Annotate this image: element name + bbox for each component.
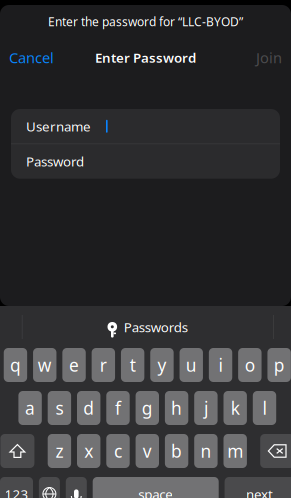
- staticText: j: [204, 396, 208, 419]
- staticText: m: [227, 439, 243, 462]
- button[interactable]: next: [225, 477, 291, 498]
- button[interactable]: m: [223, 434, 247, 468]
- button[interactable]: j: [194, 391, 218, 425]
- button[interactable]: i: [209, 348, 232, 382]
- button[interactable]: [39, 477, 60, 498]
- button[interactable]: a: [18, 391, 42, 425]
- button[interactable]: Cancel: [0, 44, 63, 70]
- staticText: Passwords: [124, 318, 188, 336]
- button[interactable]: w: [33, 348, 56, 382]
- button[interactable]: v: [136, 434, 159, 468]
- staticText: z: [55, 439, 63, 462]
- button[interactable]: t: [121, 348, 144, 382]
- button[interactable]: y: [150, 348, 174, 382]
- button[interactable]: x: [77, 434, 100, 468]
- button[interactable]: [0, 434, 34, 468]
- button[interactable]: l: [253, 391, 276, 425]
- staticText: h: [171, 396, 182, 419]
- staticText: w: [38, 353, 52, 376]
- staticText: p: [274, 353, 285, 376]
- staticText: v: [143, 439, 152, 462]
- staticText: g: [142, 396, 153, 419]
- button[interactable]: [260, 434, 291, 468]
- staticText: s: [55, 396, 63, 419]
- button[interactable]: r: [92, 348, 115, 382]
- staticText: a: [25, 396, 35, 419]
- button[interactable]: n: [194, 434, 218, 468]
- button[interactable]: 123: [0, 477, 33, 498]
- staticText: r: [100, 353, 107, 376]
- staticText: i: [219, 353, 223, 376]
- staticText: e: [69, 353, 79, 376]
- staticText: d: [83, 396, 94, 419]
- button[interactable]: u: [180, 348, 203, 382]
- button[interactable]: z: [48, 434, 71, 468]
- staticText: next: [246, 485, 273, 498]
- button[interactable]: g: [136, 391, 159, 425]
- staticText: t: [130, 353, 136, 376]
- staticText: f: [115, 396, 121, 419]
- button[interactable]: q: [4, 348, 27, 382]
- button[interactable]: p: [267, 348, 291, 382]
- staticText: Cancel: [9, 48, 54, 67]
- staticText: Enter the password for “LLC-BYOD”: [48, 13, 243, 29]
- staticText: k: [231, 396, 240, 419]
- staticText: 123: [4, 485, 28, 498]
- button[interactable]: c: [106, 434, 130, 468]
- button[interactable]: Passwords: [97, 309, 198, 345]
- staticText: b: [171, 439, 182, 462]
- button[interactable]: s: [48, 391, 71, 425]
- staticText: Password: [26, 153, 84, 170]
- staticText: y: [157, 353, 166, 376]
- button[interactable]: e: [62, 348, 86, 382]
- button[interactable]: b: [165, 434, 188, 468]
- staticText: space: [138, 485, 173, 498]
- staticText: Join: [256, 48, 282, 67]
- staticText: q: [10, 353, 21, 376]
- button[interactable]: Password: [11, 144, 280, 179]
- staticText: n: [200, 439, 211, 462]
- button[interactable]: o: [238, 348, 262, 382]
- button[interactable]: Join: [247, 44, 291, 70]
- button[interactable]: Username: [11, 109, 280, 143]
- button[interactable]: h: [165, 391, 188, 425]
- button[interactable]: k: [223, 391, 247, 425]
- button[interactable]: [66, 477, 87, 498]
- staticText: x: [84, 439, 93, 462]
- staticText: u: [186, 353, 197, 376]
- staticText: Enter Password: [95, 49, 196, 66]
- button[interactable]: d: [77, 391, 100, 425]
- staticText: c: [114, 439, 122, 462]
- button[interactable]: space: [93, 477, 219, 498]
- staticText: l: [262, 396, 266, 419]
- staticText: o: [245, 353, 255, 376]
- button[interactable]: f: [106, 391, 130, 425]
- staticText: Username: [26, 117, 91, 135]
